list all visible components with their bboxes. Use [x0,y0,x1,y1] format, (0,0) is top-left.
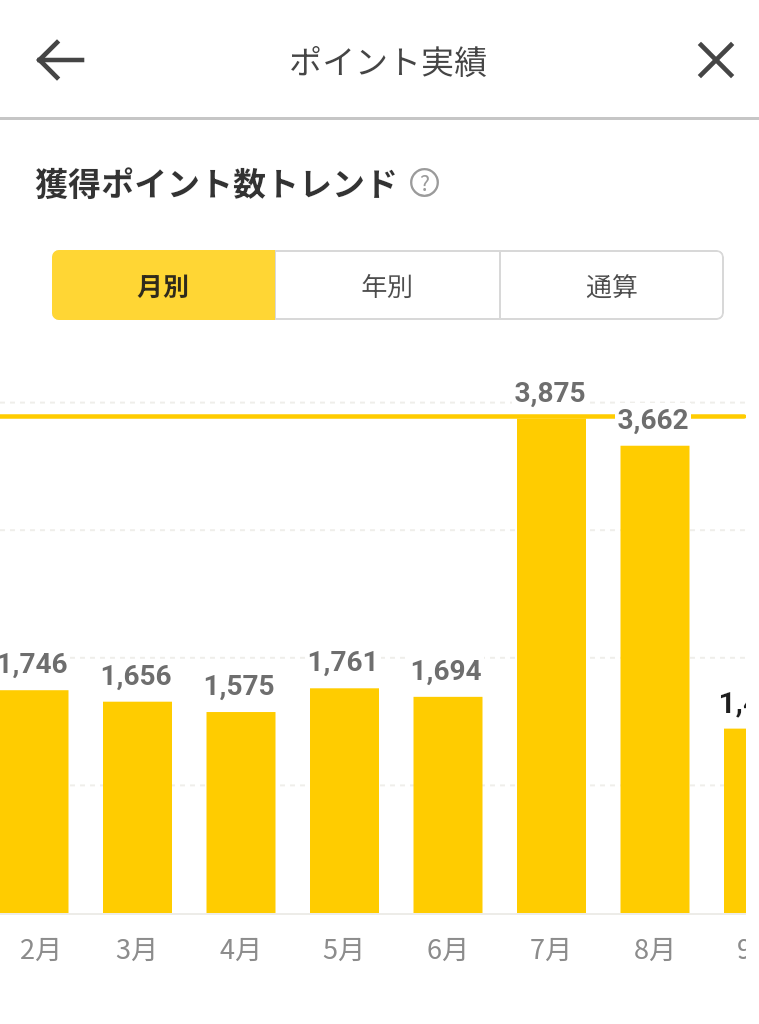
staticText: 1,445 [718,685,746,720]
button[interactable]: Close [674,18,758,102]
staticText: 4月 [220,928,262,967]
staticText: 3,875 [514,376,586,409]
staticText: 8月 [634,928,676,967]
staticText: 通算 [586,266,639,304]
button[interactable]: 通算 [501,250,724,320]
button[interactable]: Back [18,18,102,102]
staticText: 3,662 [617,403,689,436]
staticText: 1,656 [100,659,172,692]
staticText: 1,761 [307,645,379,678]
staticText: ポイント実績 [289,36,487,84]
staticText: 月別 [137,266,190,304]
button[interactable]: 年別 [276,250,499,320]
staticText: 1,746 [0,647,68,680]
staticText: 2月 [20,928,62,967]
staticText: ? [420,167,430,196]
staticText: 3月 [116,928,158,967]
button[interactable]: Help [410,168,439,197]
staticText: 7月 [530,928,572,967]
staticText: 1,575 [203,669,275,702]
staticText: 年別 [361,266,414,304]
staticText: 5月 [323,928,365,967]
button[interactable]: 月別 [52,250,275,320]
staticText: 獲得ポイント数トレンド [35,158,398,206]
staticText: 9月 [737,928,746,967]
staticText: 1,694 [410,654,482,687]
staticText: 6月 [427,928,469,967]
